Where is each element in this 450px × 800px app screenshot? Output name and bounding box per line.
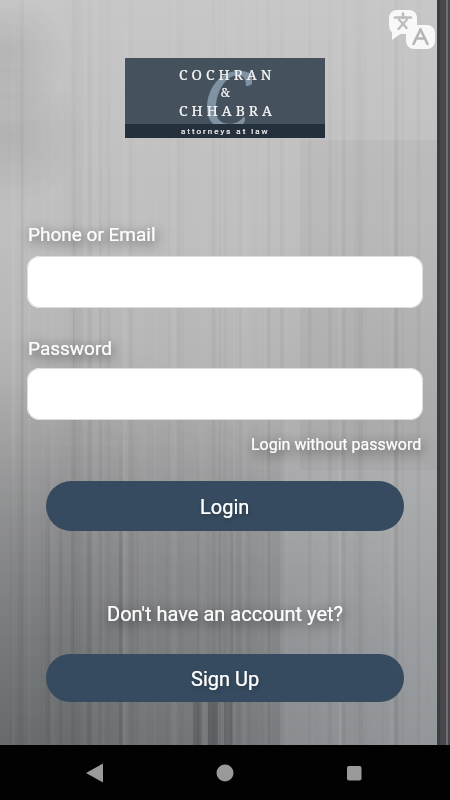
button[interactable] — [77, 761, 111, 785]
staticText: Phone or Email — [28, 223, 156, 245]
button[interactable] — [27, 256, 423, 308]
staticText: C — [203, 45, 252, 125]
button[interactable] — [27, 368, 423, 420]
staticText: Don't have an account yet? — [107, 602, 344, 625]
staticText: CHHABRA — [179, 101, 276, 120]
staticText: Login — [200, 495, 250, 518]
button[interactable] — [208, 761, 242, 785]
staticText: attorneys at law — [181, 127, 270, 136]
button[interactable] — [386, 8, 438, 52]
button[interactable] — [337, 761, 371, 785]
button[interactable]: Sign Up — [46, 654, 404, 702]
staticText: Password — [28, 337, 112, 359]
button[interactable]: Login — [46, 481, 404, 531]
button[interactable]: Login without password — [251, 435, 422, 454]
staticText: Sign Up — [191, 667, 260, 690]
staticText: COCHRAN — [179, 65, 276, 84]
staticText: & — [221, 84, 232, 100]
